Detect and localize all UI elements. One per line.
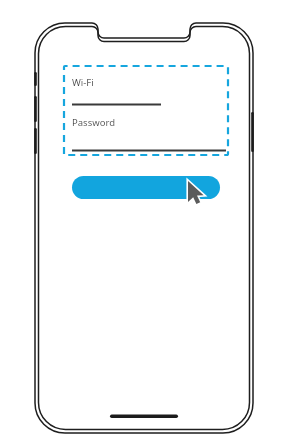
button[interactable]: Connect xyxy=(72,176,220,199)
button[interactable]: Wi-Fi network name field xyxy=(72,72,228,106)
button[interactable]: Password field xyxy=(72,112,228,152)
